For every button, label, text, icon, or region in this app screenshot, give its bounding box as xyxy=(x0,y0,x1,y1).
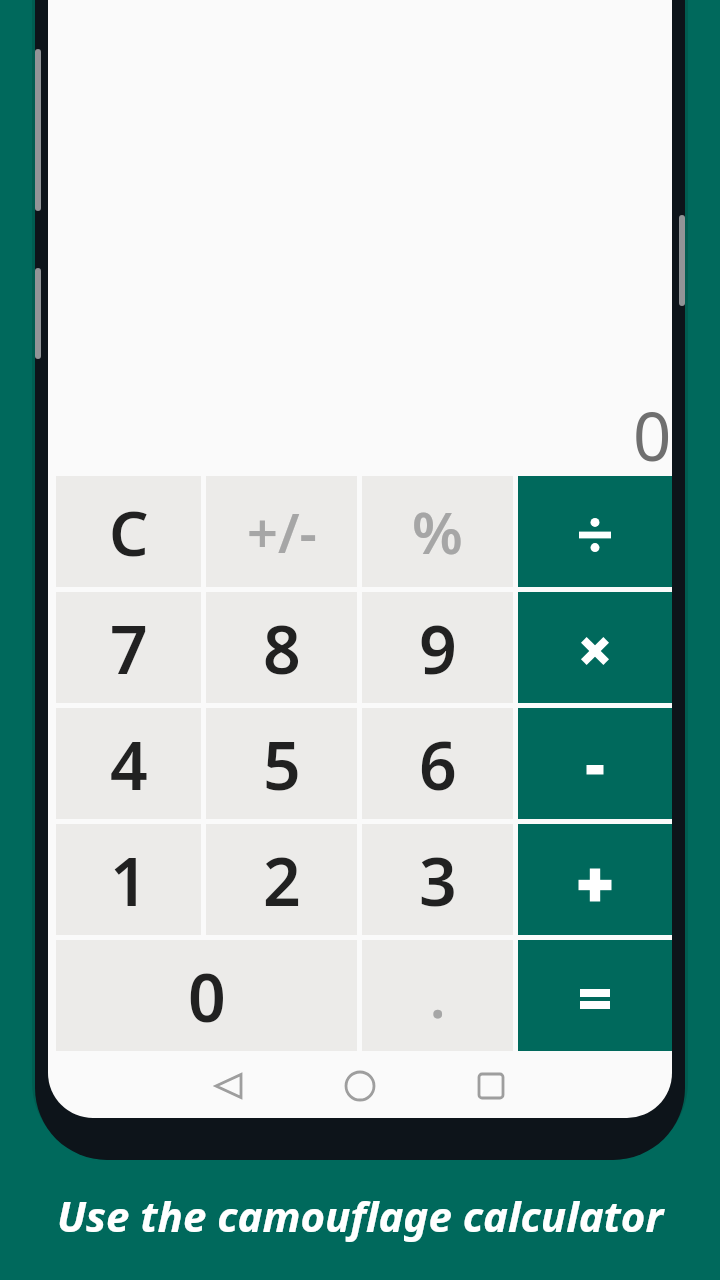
button[interactable]: 6 xyxy=(362,708,513,819)
button[interactable]: +/- xyxy=(206,476,357,587)
button[interactable]: 7 xyxy=(56,592,201,703)
button[interactable] xyxy=(518,476,672,587)
staticText: +/- xyxy=(247,495,317,569)
button[interactable] xyxy=(518,708,672,819)
staticText: 7 xyxy=(110,603,148,693)
button[interactable]: % xyxy=(362,476,513,587)
staticText: 1 xyxy=(110,835,148,925)
button[interactable]: 1 xyxy=(56,824,201,935)
staticText: C xyxy=(109,490,149,574)
staticText: . xyxy=(430,958,446,1034)
button[interactable] xyxy=(476,1071,506,1101)
staticText: 8 xyxy=(263,603,301,693)
button[interactable]: C xyxy=(56,476,201,587)
staticText: 4 xyxy=(110,719,148,809)
button[interactable] xyxy=(345,1071,375,1101)
button[interactable]: 9 xyxy=(362,592,513,703)
button[interactable]: 4 xyxy=(56,708,201,819)
button[interactable] xyxy=(214,1071,244,1101)
button[interactable]: 5 xyxy=(206,708,357,819)
staticText: 6 xyxy=(419,719,457,809)
staticText: 0 xyxy=(188,951,226,1041)
staticText: 5 xyxy=(263,719,301,809)
staticText: 0 xyxy=(633,389,672,480)
button[interactable] xyxy=(518,592,672,703)
button[interactable]: 2 xyxy=(206,824,357,935)
button[interactable]: 3 xyxy=(362,824,513,935)
button[interactable]: 8 xyxy=(206,592,357,703)
staticText: 9 xyxy=(419,603,457,693)
button[interactable]: 0 xyxy=(56,940,357,1051)
staticText: % xyxy=(412,492,463,571)
button[interactable] xyxy=(518,940,672,1051)
staticText: 3 xyxy=(419,835,457,925)
staticText: Use the camouflage calculator xyxy=(57,1187,664,1244)
staticText: 2 xyxy=(263,835,301,925)
button[interactable]: . xyxy=(362,940,513,1051)
button[interactable] xyxy=(518,824,672,935)
